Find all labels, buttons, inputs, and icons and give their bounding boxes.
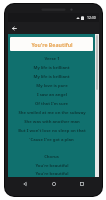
- button[interactable]: Back: [19, 178, 31, 190]
- staticText: My life is brilliant: [33, 65, 70, 71]
- button[interactable]: You're Beautiful: [10, 37, 93, 51]
- button[interactable]: Home: [48, 178, 60, 190]
- button[interactable]: Recent apps: [76, 178, 88, 190]
- staticText: 'Cause I've got a plan: [29, 137, 74, 143]
- staticText: You're beautiful: [35, 163, 69, 169]
- staticText: My life is brilliant: [33, 74, 70, 80]
- staticText: But I won't lose no sleep on that: [18, 128, 86, 134]
- staticText: Of that I'm sure: [35, 101, 68, 107]
- button[interactable]: Back: [9, 23, 20, 34]
- staticText: She smiled at me on the subway: [18, 110, 86, 116]
- staticText: She was with another man: [24, 119, 80, 125]
- staticText: You're beautiful: [35, 171, 69, 177]
- staticText: Verse 1: [44, 56, 60, 62]
- staticText: I saw an angel: [37, 92, 67, 98]
- staticText: Chorus: [44, 154, 59, 160]
- staticText: My love is pure: [36, 83, 68, 89]
- staticText: You're Beautiful: [31, 41, 73, 48]
- staticText: 12:30: [87, 15, 96, 20]
